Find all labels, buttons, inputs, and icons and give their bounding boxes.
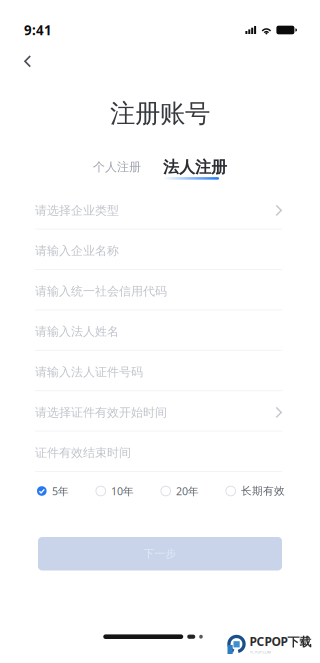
button[interactable]: 个人注册 (93, 159, 141, 180)
button[interactable]: 请输入统一社会信用代码 (0, 270, 320, 310)
staticText: 下一步 (143, 547, 176, 560)
staticText: 5年 (52, 484, 69, 498)
staticText: PCPOP下载 (249, 633, 311, 649)
staticText: 个人注册 (93, 160, 141, 174)
staticText: 9:41 (24, 21, 52, 39)
button[interactable]: 请输入法人姓名 (0, 310, 320, 351)
staticText: 请输入法人姓名 (35, 324, 119, 339)
button[interactable]: 请输入法人证件号码 (0, 351, 320, 391)
staticText: PCPOP.COM (249, 649, 271, 655)
button[interactable]: 5年 (37, 484, 69, 498)
staticText: 请选择企业类型 (35, 203, 119, 218)
staticText: 请输入企业名称 (35, 243, 119, 258)
staticText: 注册账号 (110, 98, 210, 129)
button[interactable]: 法人注册 (163, 159, 227, 180)
button[interactable]: 证件有效结束时间 (0, 432, 320, 472)
button[interactable]: Back (0, 51, 47, 72)
staticText: 法人注册 (163, 157, 227, 177)
button[interactable]: 请输入企业名称 (0, 230, 320, 270)
button[interactable]: 长期有效 (226, 484, 285, 497)
staticText: 请输入法人证件号码 (35, 365, 143, 379)
staticText: 请选择证件有效开始时间 (35, 405, 167, 420)
button[interactable]: 请选择证件有效开始时间 (0, 391, 320, 432)
button[interactable]: 请选择企业类型 (0, 189, 320, 230)
staticText: 10年 (111, 484, 134, 498)
staticText: 证件有效结束时间 (35, 445, 131, 460)
button[interactable]: 20年 (161, 484, 199, 498)
staticText: 长期有效 (241, 484, 285, 497)
staticText: 请输入统一社会信用代码 (35, 284, 167, 298)
button[interactable]: 10年 (96, 484, 134, 498)
staticText: 20年 (176, 484, 199, 498)
